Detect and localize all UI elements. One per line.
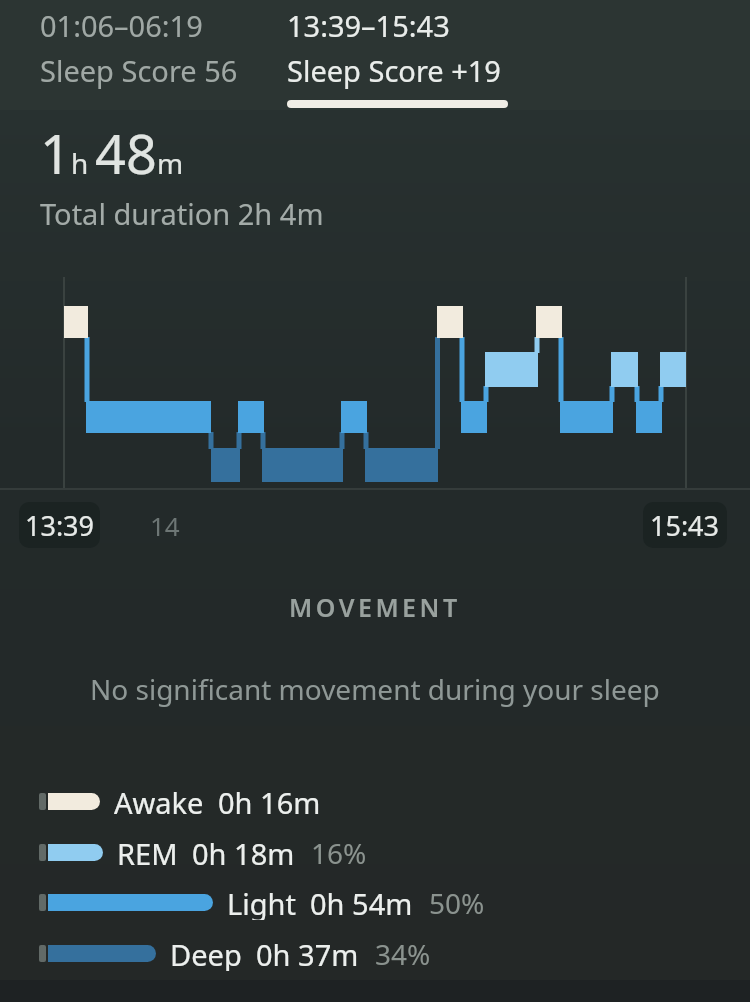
staticText: 16% [311,834,367,870]
button[interactable]: 01:06–06:19 [0,0,266,110]
staticText: 0h 16m [218,783,321,819]
staticText: Light [227,884,296,920]
staticText: Total duration 2h 4m [40,194,324,233]
staticText: Awake [114,783,204,819]
staticText: REM [117,834,178,870]
staticText: 1 [40,116,71,190]
staticText: 48 [95,116,157,190]
button[interactable]: REM [39,834,367,870]
staticText: Sleep Score 56 [40,51,238,90]
staticText: 01:06–06:19 [40,6,203,45]
staticText: 14 [150,508,180,543]
staticText: h [71,144,89,182]
staticText: 15:43 [650,507,720,544]
staticText: 50% [429,884,485,920]
button[interactable]: 13:39 [19,502,100,548]
staticText: Deep [170,935,242,971]
staticText: 0h 37m [256,935,359,971]
button[interactable]: Awake [39,783,321,819]
staticText: 13:39 [25,507,95,544]
staticText: 13:39–15:43 [287,6,450,45]
staticText: 0h 54m [310,884,413,920]
staticText: Sleep Score +19 [287,51,501,90]
button[interactable]: 15:43 [643,502,727,548]
staticText: MOVEMENT [289,590,461,624]
staticText: 34% [375,935,431,971]
button[interactable]: Light [39,884,485,920]
staticText: No significant movement during your slee… [90,670,660,708]
staticText: 0h 18m [192,834,295,870]
staticText: m [157,144,184,182]
button[interactable]: Deep [39,935,431,971]
button[interactable]: 13:39–15:43 [266,0,536,110]
